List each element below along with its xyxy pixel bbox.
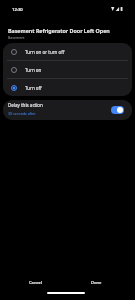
button[interactable]: Turn on xyxy=(3,61,132,78)
staticText: Basement Refrigerator Door Left Open xyxy=(8,27,110,34)
button[interactable]: Delay this action toggle xyxy=(111,106,124,114)
button[interactable]: Turn on or turn off xyxy=(3,43,132,60)
button[interactable]: Delay this action xyxy=(3,100,132,120)
button[interactable]: Done xyxy=(80,276,112,290)
staticText: Turn on or turn off xyxy=(25,49,65,55)
staticText: 30 seconds after xyxy=(8,111,36,116)
button[interactable]: Cancel xyxy=(19,276,51,290)
staticText: Done xyxy=(91,280,102,286)
staticText: Turn on xyxy=(25,67,42,73)
staticText: Cancel xyxy=(29,280,42,286)
other: Status icons xyxy=(111,7,123,11)
staticText: Basement xyxy=(8,35,25,40)
staticText: 12:30 xyxy=(12,7,23,13)
button[interactable]: Turn off xyxy=(3,79,132,96)
staticText: Delay this action xyxy=(8,102,43,108)
staticText: Turn off xyxy=(25,85,42,91)
